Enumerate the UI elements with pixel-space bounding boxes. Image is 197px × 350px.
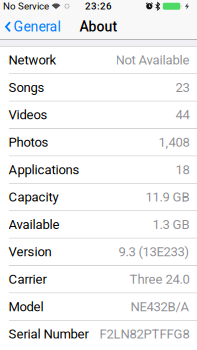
staticText: 44 [175, 107, 189, 122]
staticText: 18 [175, 162, 189, 177]
staticText: Network [8, 52, 56, 68]
staticText: Available [8, 217, 59, 232]
staticText: 23 [175, 80, 189, 95]
staticText: Model [8, 299, 43, 314]
staticText: No Service [3, 0, 49, 12]
staticText: 11.9 GB [145, 189, 189, 205]
staticText: 1.3 GB [152, 217, 189, 232]
staticText: About [79, 18, 117, 35]
staticText: Photos [8, 135, 48, 150]
staticText: General [13, 18, 60, 35]
staticText: Capacity [8, 189, 58, 205]
staticText: 23:26 [85, 0, 112, 12]
staticText: Serial Number [8, 326, 88, 342]
staticText: Three 24.0 [129, 272, 189, 287]
staticText: Carrier [8, 272, 46, 287]
staticText: F2LN82PTFFG8 [99, 326, 189, 342]
staticText: NE432B/A [130, 299, 189, 314]
staticText: Videos [8, 107, 47, 122]
staticText: Not Available [115, 52, 189, 68]
staticText: Songs [8, 80, 44, 95]
staticText: Version [8, 244, 51, 259]
staticText: Applications [8, 162, 79, 177]
staticText: 1,408 [158, 135, 189, 150]
staticText: 9.3 (13E233) [118, 244, 189, 259]
button[interactable]: Back [0, 18, 60, 35]
